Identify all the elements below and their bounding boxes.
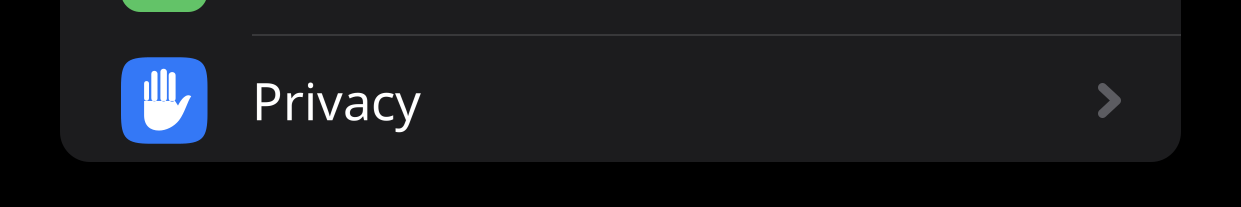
staticText: Privacy	[252, 67, 421, 134]
button[interactable]: Wallet	[60, 0, 1181, 34]
button[interactable]: Privacy	[60, 36, 1181, 162]
